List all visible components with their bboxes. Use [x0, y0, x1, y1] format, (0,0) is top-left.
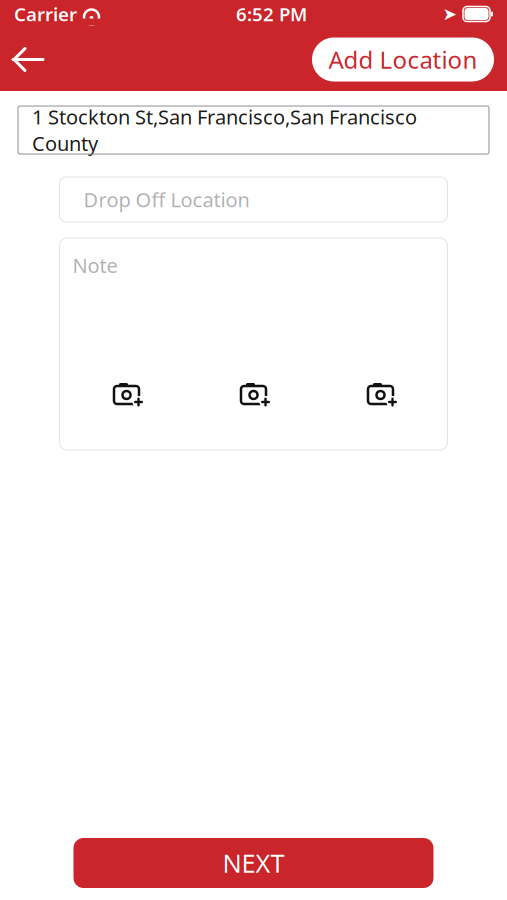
- button[interactable]: Add photo: [96, 370, 156, 416]
- staticText: 1 Stockton St,San Francisco,San Francisc…: [32, 103, 417, 156]
- staticText: 6:52 PM: [236, 2, 307, 26]
- button[interactable]: Add photo: [223, 370, 283, 416]
- staticText: Note: [72, 252, 117, 279]
- staticText: ➤: [442, 4, 457, 24]
- button[interactable]: Add photo: [350, 370, 410, 416]
- staticText: Carrier: [14, 2, 77, 26]
- staticText: Add Location: [328, 44, 477, 75]
- button[interactable]: Back: [0, 28, 56, 91]
- button[interactable]: NEXT: [73, 838, 433, 888]
- staticText: Drop Off Location: [83, 186, 249, 213]
- button[interactable]: Add Location: [312, 37, 494, 81]
- staticText: NEXT: [222, 846, 284, 880]
